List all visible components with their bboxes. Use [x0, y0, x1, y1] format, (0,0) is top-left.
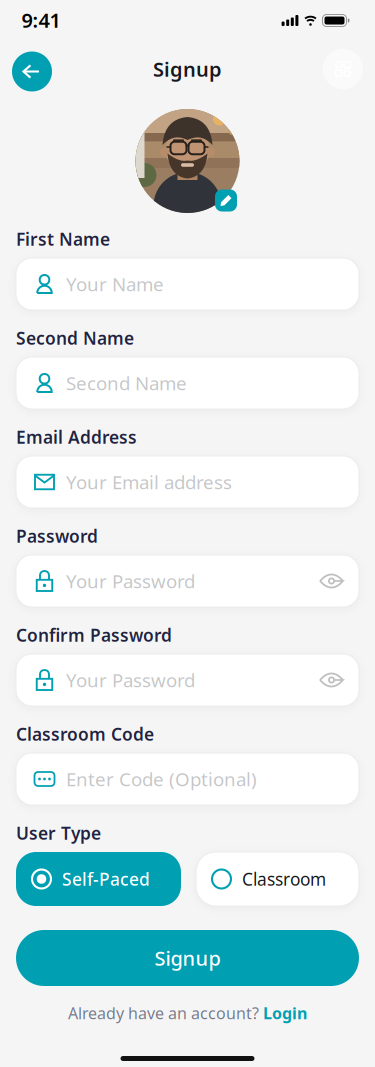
staticText: Confirm Password — [16, 623, 172, 646]
button[interactable]: Your Password — [16, 555, 359, 607]
staticText: Enter Code (Optional) — [66, 767, 257, 791]
staticText: Signup — [153, 56, 222, 82]
button[interactable]: Your Password — [16, 654, 359, 706]
staticText: Email Address — [16, 425, 137, 448]
staticText: Your Name — [66, 272, 164, 296]
staticText: Signup — [154, 945, 220, 971]
staticText: Self-Paced — [62, 867, 150, 890]
staticText: Your Email address — [66, 470, 232, 494]
staticText: Classroom Code — [16, 722, 154, 745]
button[interactable]: Signup — [16, 930, 359, 986]
staticText: Login — [263, 1002, 307, 1024]
staticText: Second Name — [16, 326, 134, 349]
button[interactable]: Your Name — [16, 258, 359, 310]
staticText: Second Name — [66, 371, 187, 395]
staticText: Already have an account? — [68, 1002, 259, 1024]
button[interactable]: Already have an account? — [68, 1002, 307, 1024]
button[interactable]: Second Name — [16, 357, 359, 409]
button[interactable]: Self-Paced — [16, 852, 181, 906]
button[interactable] — [215, 189, 237, 211]
button[interactable]: Your Email address — [16, 456, 359, 508]
staticText: User Type — [16, 821, 101, 844]
button[interactable]: Enter Code (Optional) — [16, 753, 359, 805]
staticText: 9:41 — [21, 7, 60, 33]
button[interactable]: Classroom — [196, 852, 359, 906]
staticText: Classroom — [242, 867, 326, 890]
button[interactable] — [12, 51, 52, 91]
staticText: Password — [16, 524, 98, 547]
staticText: First Name — [16, 227, 110, 250]
staticText: Your Password — [66, 569, 195, 593]
staticText: Your Password — [66, 668, 195, 692]
